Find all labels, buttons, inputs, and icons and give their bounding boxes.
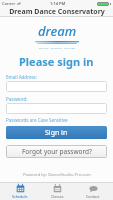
staticText: Email Address: (6, 74, 37, 80)
staticText: Sign in (45, 128, 68, 138)
staticText: Contact (86, 194, 100, 199)
button[interactable]: Sign in (6, 126, 107, 139)
button[interactable] (6, 81, 107, 92)
button[interactable]: Contact (76, 183, 110, 200)
staticText: Powered by: DanceStudio-Pro.com (23, 172, 91, 178)
staticText: dream (38, 22, 77, 40)
staticText: Schedule (12, 194, 28, 199)
staticText: Classes (51, 194, 64, 199)
staticText: Forgot your password? (22, 147, 92, 156)
button[interactable]: Schedule (3, 183, 37, 200)
staticText: Passwords are Case Sensitive (6, 117, 68, 123)
staticText: Password: (6, 96, 28, 102)
button[interactable] (6, 103, 107, 114)
staticText: DANCE SCHOOL CENTER (39, 46, 76, 49)
staticText: Carrier (2, 1, 16, 6)
staticText: Dream Dance Conservatory (9, 7, 105, 17)
staticText: 1:14 PM (50, 1, 66, 6)
button[interactable]: Forgot your password? (6, 145, 107, 158)
staticText: Please sign in (19, 54, 94, 69)
button[interactable]: Classes (40, 183, 74, 200)
